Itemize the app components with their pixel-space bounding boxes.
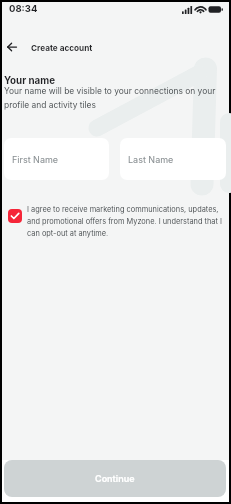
staticText: Create account [31,43,93,53]
button[interactable]: Continue [4,460,226,497]
staticText: Your name [4,75,56,87]
button[interactable]: First Name [4,138,109,180]
button[interactable]: Back [0,35,24,59]
staticText: I agree to receive marketing communicati… [27,205,226,238]
staticText: Continue [95,473,135,484]
staticText: Your name will be visible to your connec… [4,86,224,110]
button[interactable]: Last Name [120,138,226,180]
staticText: Last Name [128,154,174,165]
staticText: First Name [12,154,59,165]
staticText: 08:34 [9,3,38,14]
button[interactable]: I agree to receive marketing communicati… [8,206,226,239]
